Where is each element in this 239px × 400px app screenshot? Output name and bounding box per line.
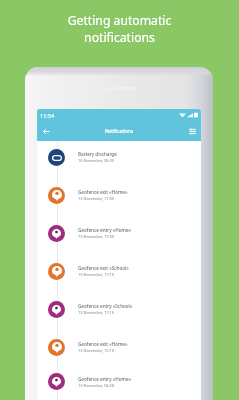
- button[interactable]: Back: [37, 122, 55, 140]
- staticText: Geofence entry «Home»: [78, 227, 132, 233]
- button[interactable]: Geofence exit «Home»: [37, 176, 201, 214]
- staticText: 13 November, 17:16: [78, 272, 115, 277]
- button[interactable]: Geofence exit «Home»: [37, 328, 201, 366]
- staticText: 13 November, 17:35: [78, 196, 115, 201]
- button[interactable]: Geofence exit «School»: [37, 252, 201, 290]
- staticText: 13 November, 17:30: [78, 234, 115, 239]
- button[interactable]: Battery discharge: [37, 138, 201, 176]
- staticText: Getting automatic notifications: [0, 12, 239, 45]
- button[interactable]: Sort: [183, 122, 201, 140]
- button[interactable]: Geofence entry «School»: [37, 290, 201, 328]
- staticText: Notifications: [105, 128, 134, 134]
- button[interactable]: Geofence entry «Home»: [37, 214, 201, 252]
- staticText: 13 November, 04:28: [78, 383, 115, 388]
- staticText: 13 November, 13:10: [78, 348, 115, 353]
- staticText: Geofence exit «Home»: [78, 341, 128, 347]
- staticText: Geofence exit «School»: [78, 265, 129, 271]
- button[interactable]: Geofence entry «Home»: [37, 366, 201, 397]
- staticText: 13 November, 17:16: [78, 310, 115, 315]
- staticText: 16 November, 06:35: [78, 158, 115, 163]
- staticText: 11:54: [40, 112, 55, 119]
- staticText: Battery discharge: [78, 151, 117, 157]
- staticText: Geofence entry «School»: [78, 303, 133, 309]
- staticText: Geofence entry «Home»: [78, 376, 132, 382]
- staticText: Geofence exit «Home»: [78, 189, 128, 195]
